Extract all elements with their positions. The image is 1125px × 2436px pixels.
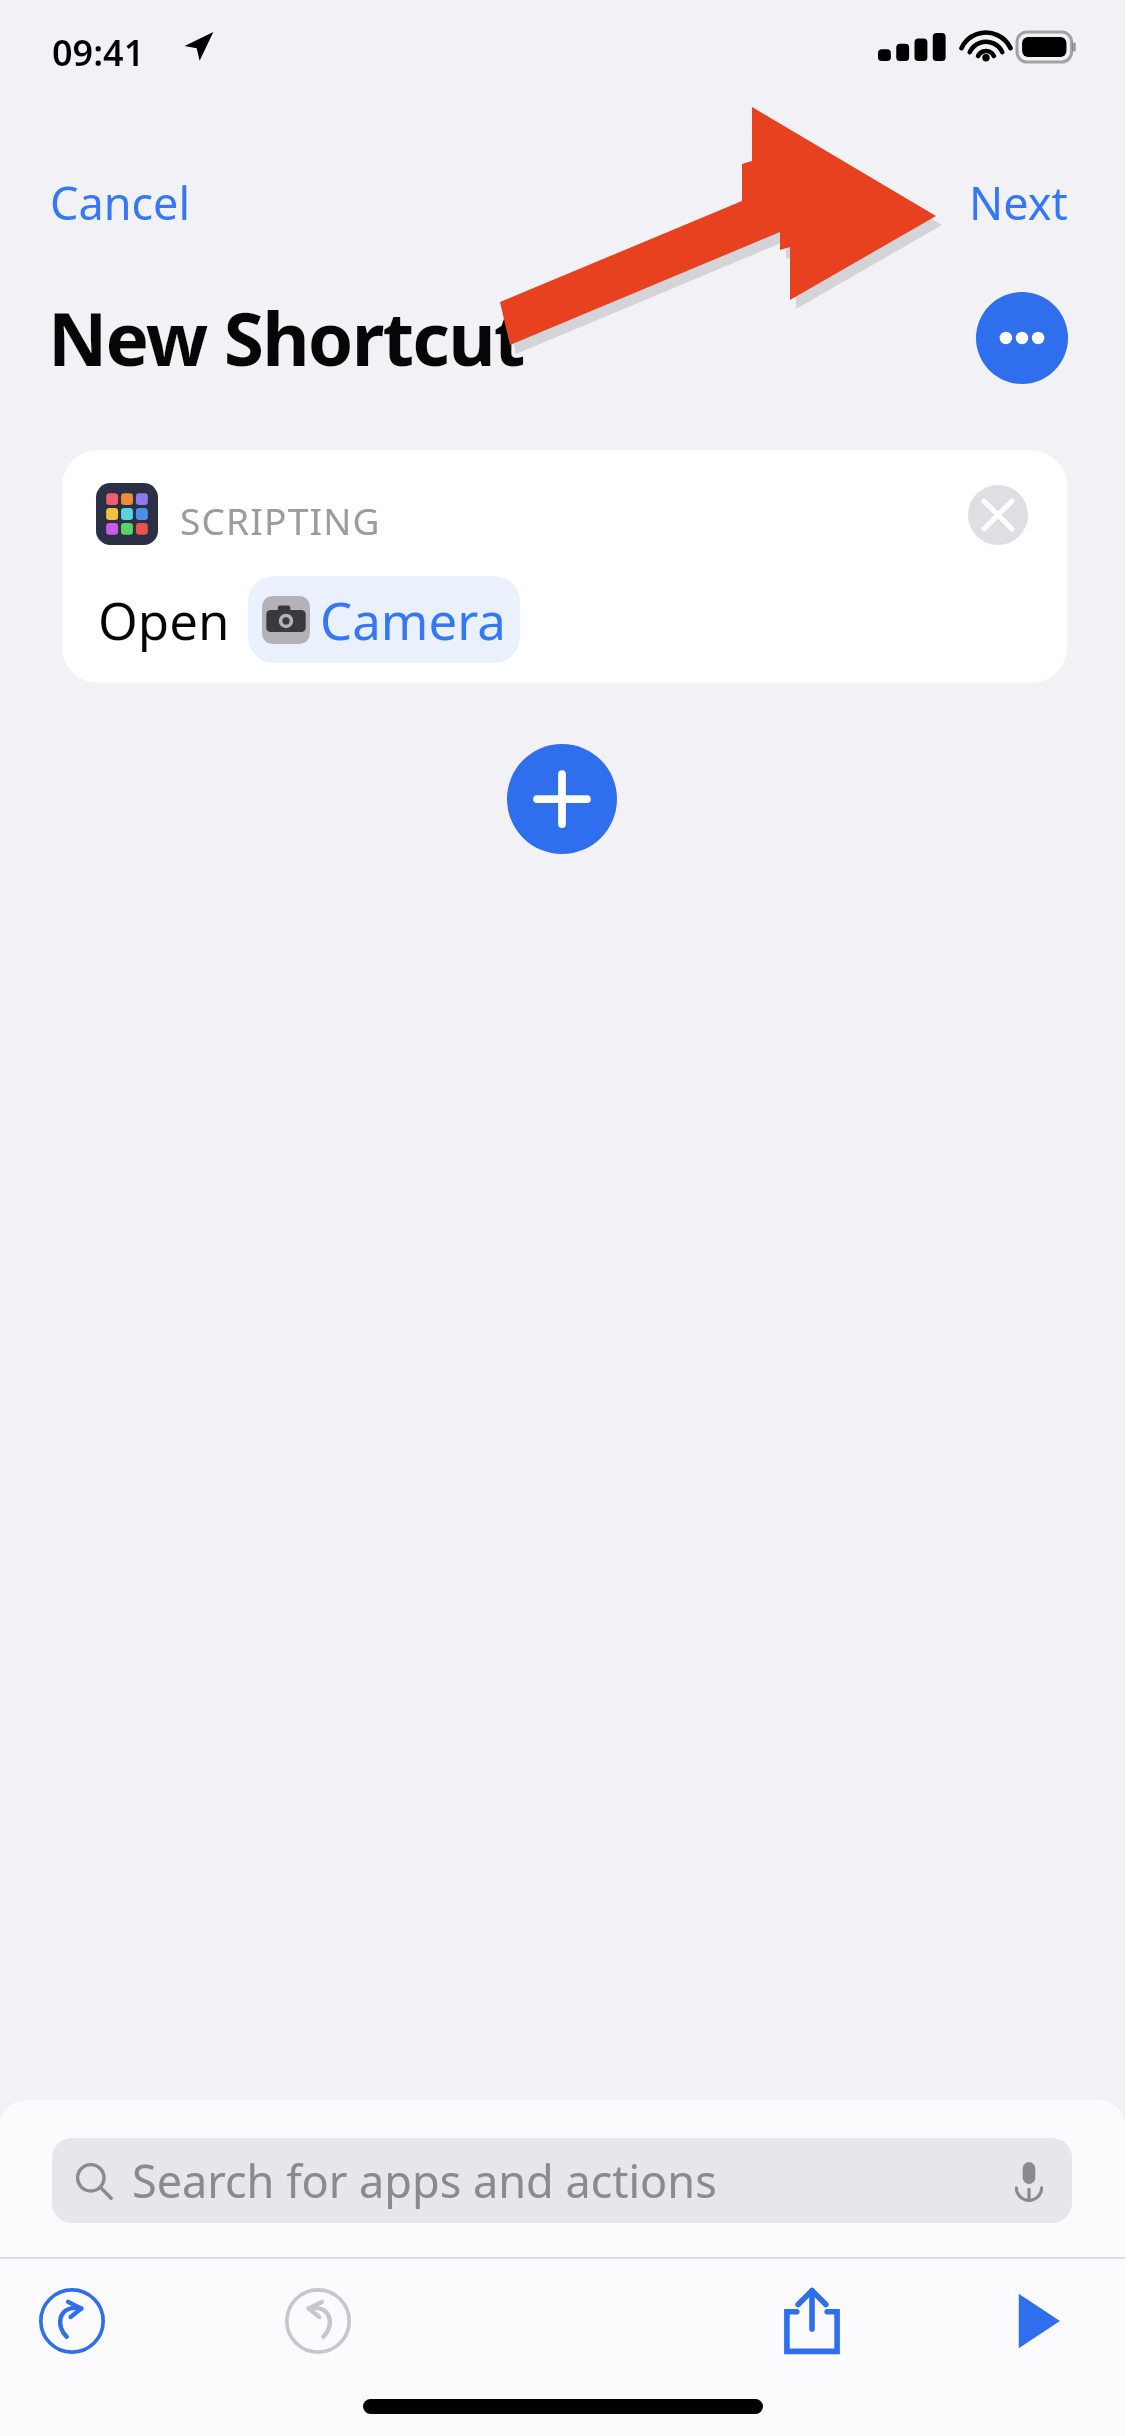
button[interactable]: Camera xyxy=(248,576,520,663)
button[interactable]: Remove action xyxy=(968,485,1028,545)
button[interactable]: Search for apps and actions xyxy=(52,2138,1072,2223)
staticText: Cancel xyxy=(50,172,191,233)
staticText: Next xyxy=(969,172,1068,233)
staticText: 09:41 xyxy=(52,28,145,77)
button[interactable]: Share xyxy=(762,2271,862,2371)
staticText: New Shortcut xyxy=(48,288,524,387)
other: Voice search xyxy=(1008,2160,1050,2202)
staticText: SCRIPTING xyxy=(180,495,381,545)
button[interactable]: Next xyxy=(945,158,1092,247)
staticText: Camera xyxy=(320,585,506,654)
button[interactable]: Add action xyxy=(507,744,617,854)
staticText: Open xyxy=(98,585,230,654)
staticText: Search for apps and actions xyxy=(132,2150,717,2211)
button[interactable]: Cancel xyxy=(26,158,215,247)
button[interactable]: Undo xyxy=(22,2271,122,2371)
button[interactable]: More options xyxy=(976,292,1068,384)
button[interactable]: Run shortcut xyxy=(985,2271,1085,2371)
button[interactable]: Redo xyxy=(268,2271,368,2371)
button[interactable]: SCRIPTING xyxy=(62,450,1067,683)
